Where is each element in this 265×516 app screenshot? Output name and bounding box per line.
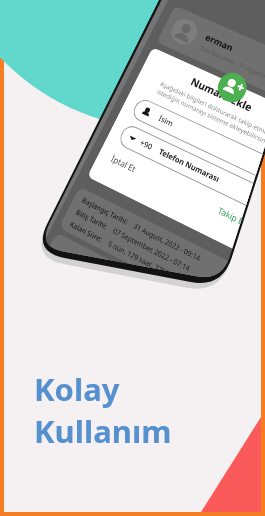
staticText: Kolay Kullanım — [34, 368, 261, 452]
staticText: Telefon Numarası — [157, 146, 221, 186]
staticText: Paket Bilgileri — [49, 253, 103, 290]
staticText: Takip Et — [216, 204, 249, 229]
staticText: +90 — [138, 137, 155, 153]
button[interactable]: Takip Et — [213, 201, 252, 232]
staticText: 5 gün, 129 saat, 7793 dakika (100%) — [107, 239, 213, 298]
staticText: Başlangıç Tarihi: — [80, 196, 130, 227]
button[interactable]: erman — [156, 5, 261, 110]
staticText: İsim — [156, 113, 175, 130]
staticText: Son Görülme : 31 Ağustos — [199, 44, 261, 81]
staticText: İptal Et — [109, 153, 138, 175]
button[interactable]: İptal Et — [106, 150, 141, 178]
button[interactable]: Numara Ekle — [213, 68, 251, 107]
staticText: 07 September, 2022 - 07:14 — [111, 226, 191, 274]
button[interactable]: Paket Bilgileri — [33, 232, 227, 370]
staticText: Bitiş Tarihi: — [74, 207, 110, 232]
button[interactable]: +90 — [116, 123, 261, 210]
staticText: Kalan Süre: — [69, 219, 105, 243]
staticText: Mevcut Paketim — [117, 275, 176, 315]
button[interactable]: Başlangıç Tarihi: — [59, 186, 247, 315]
button[interactable] — [88, 50, 261, 257]
staticText: Aşağıdaki bilgileri doldurarak takip etm… — [143, 75, 261, 152]
staticText: 31 August, 2022 - 09:14 — [132, 221, 202, 264]
staticText: erman — [204, 31, 236, 53]
button[interactable]: İsim — [130, 96, 261, 181]
staticText: Numara Ekle — [188, 74, 254, 115]
